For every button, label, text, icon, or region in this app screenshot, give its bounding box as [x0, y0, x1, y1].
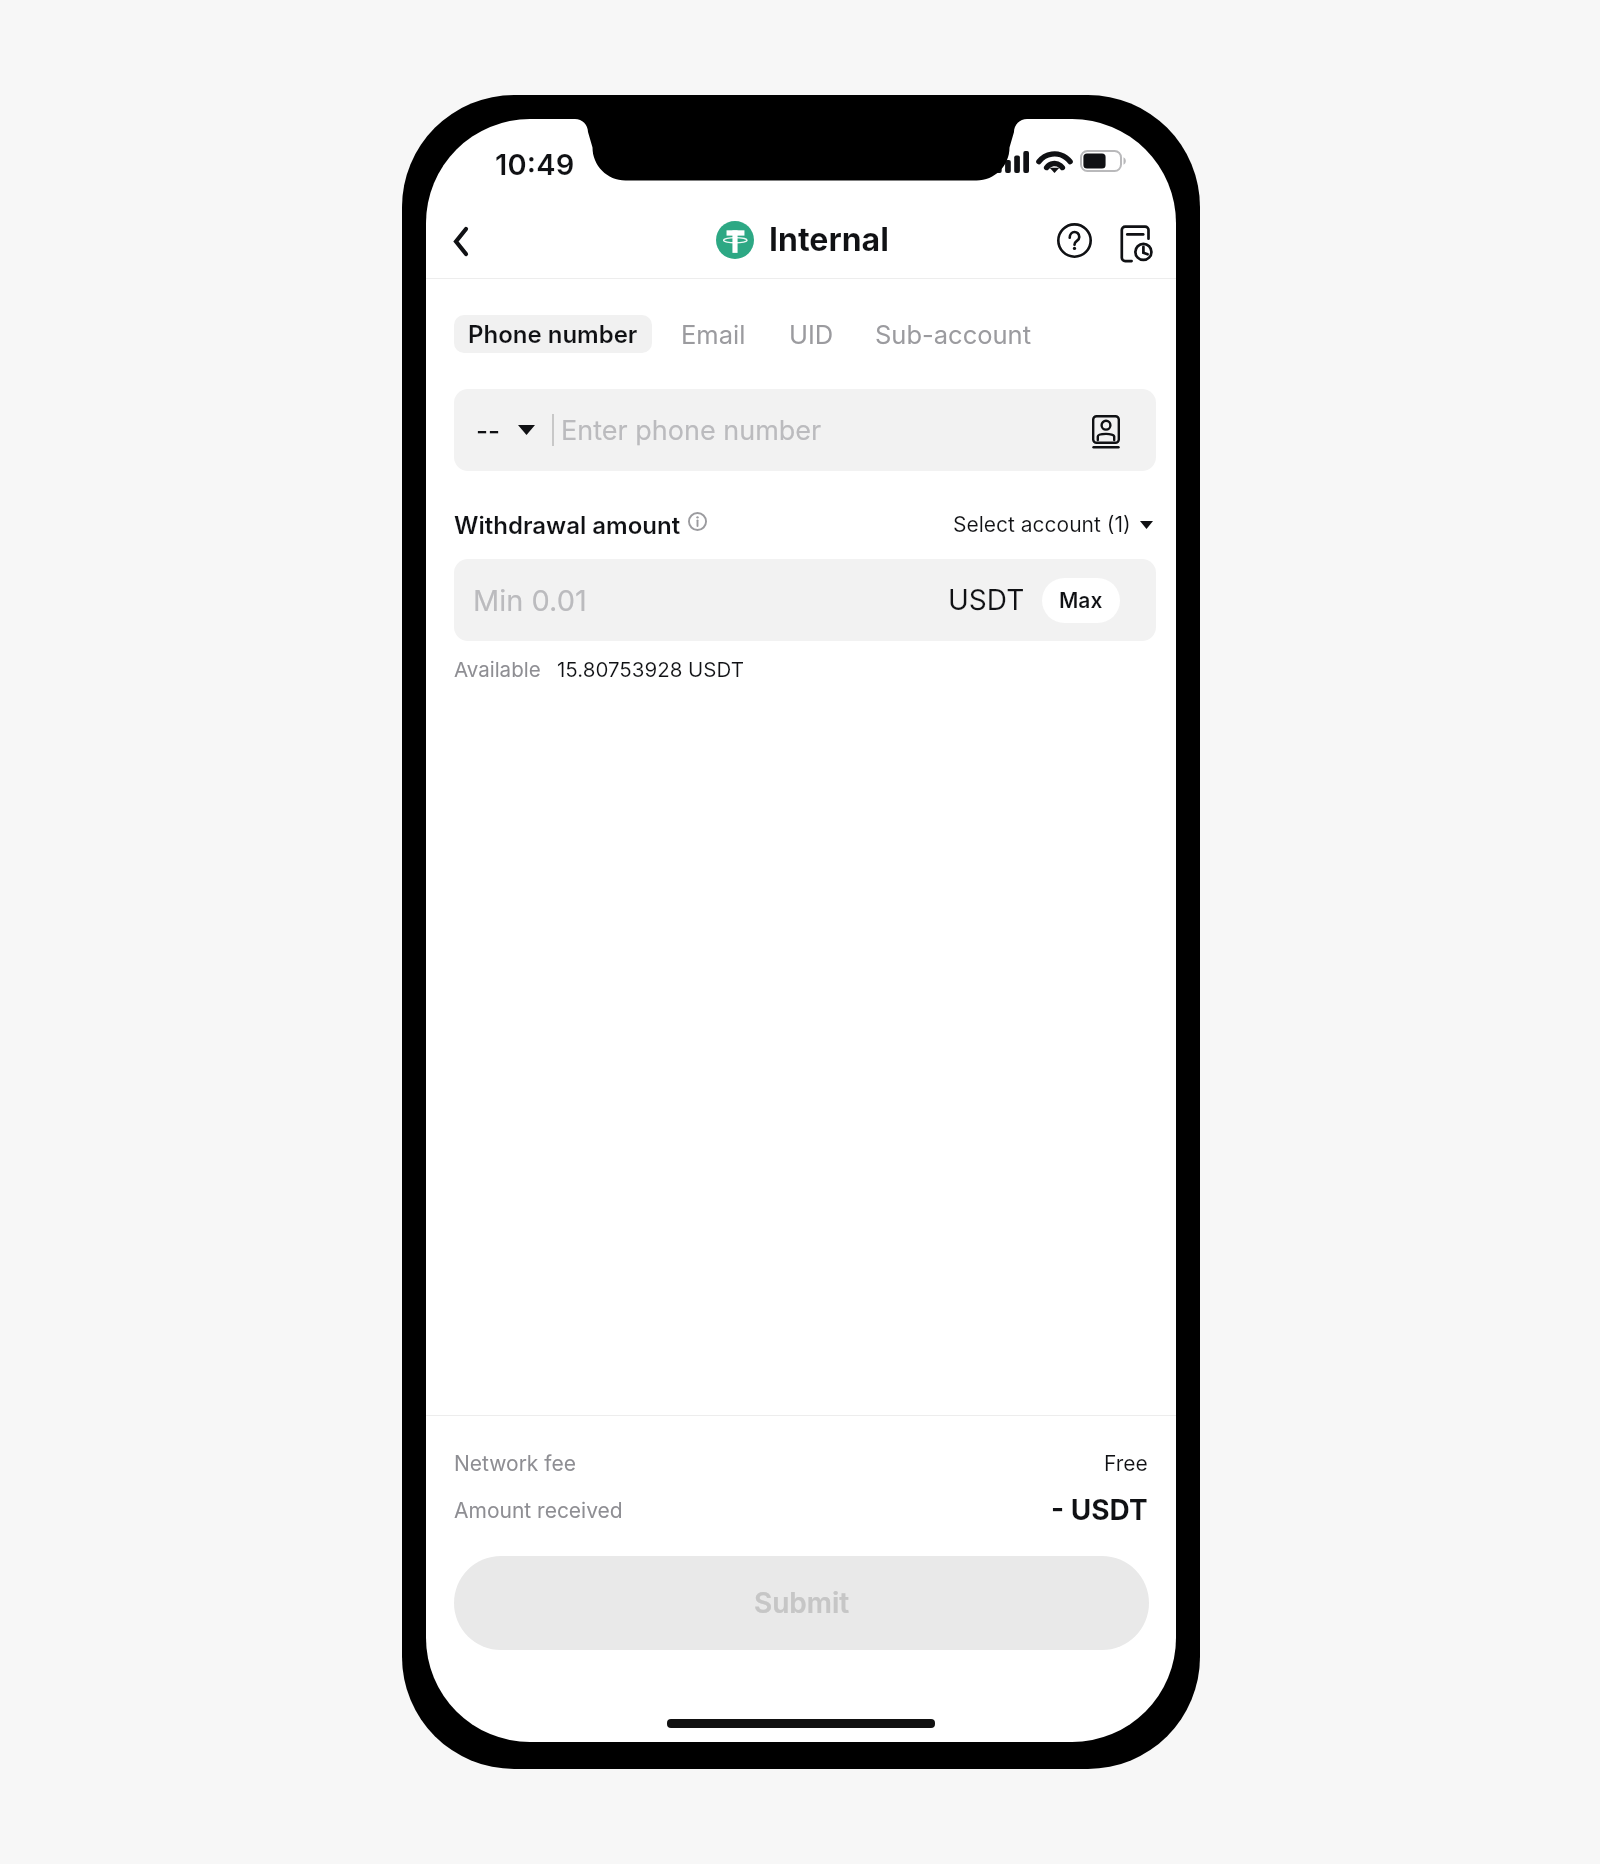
button[interactable]: Sub-account: [873, 315, 1034, 353]
button[interactable]: UID: [785, 315, 838, 353]
staticText: Enter phone number: [561, 414, 822, 447]
button[interactable]: Submit: [454, 1556, 1149, 1650]
button[interactable]: Choose from contacts: [1080, 404, 1132, 456]
button[interactable]: Help: [1046, 212, 1102, 268]
staticText: Email: [681, 319, 746, 350]
button[interactable]: Info: [679, 503, 715, 539]
staticText: Internal: [769, 220, 889, 259]
staticText: Phone number: [468, 320, 638, 349]
button[interactable]: Max: [1042, 578, 1120, 623]
staticText: Free: [1104, 1451, 1148, 1476]
staticText: Min 0.01: [473, 583, 587, 618]
staticText: Available: [454, 657, 541, 682]
button[interactable]: Transaction history: [1107, 212, 1163, 268]
staticText: Select account (1): [953, 512, 1131, 537]
staticText: Submit: [754, 1586, 850, 1620]
button[interactable]: Phone number: [454, 315, 652, 353]
staticText: Network fee: [454, 1451, 576, 1476]
staticText: USDT: [948, 583, 1025, 617]
staticText: Withdrawal amount: [454, 511, 681, 540]
staticText: 15.80753928 USDT: [557, 657, 744, 682]
staticText: - USDT: [1051, 1493, 1148, 1527]
staticText: UID: [789, 319, 834, 350]
staticText: 10:49: [495, 147, 575, 182]
staticText: --: [476, 415, 501, 446]
staticText: Amount received: [454, 1498, 623, 1523]
button[interactable]: --: [454, 389, 1156, 471]
button[interactable]: Select account (1): [953, 512, 1153, 537]
button[interactable]: Min 0.01: [454, 559, 1156, 641]
button[interactable]: Back: [433, 213, 489, 269]
staticText: Sub-account: [875, 319, 1032, 350]
button[interactable]: Email: [677, 315, 749, 353]
staticText: Max: [1059, 588, 1103, 613]
